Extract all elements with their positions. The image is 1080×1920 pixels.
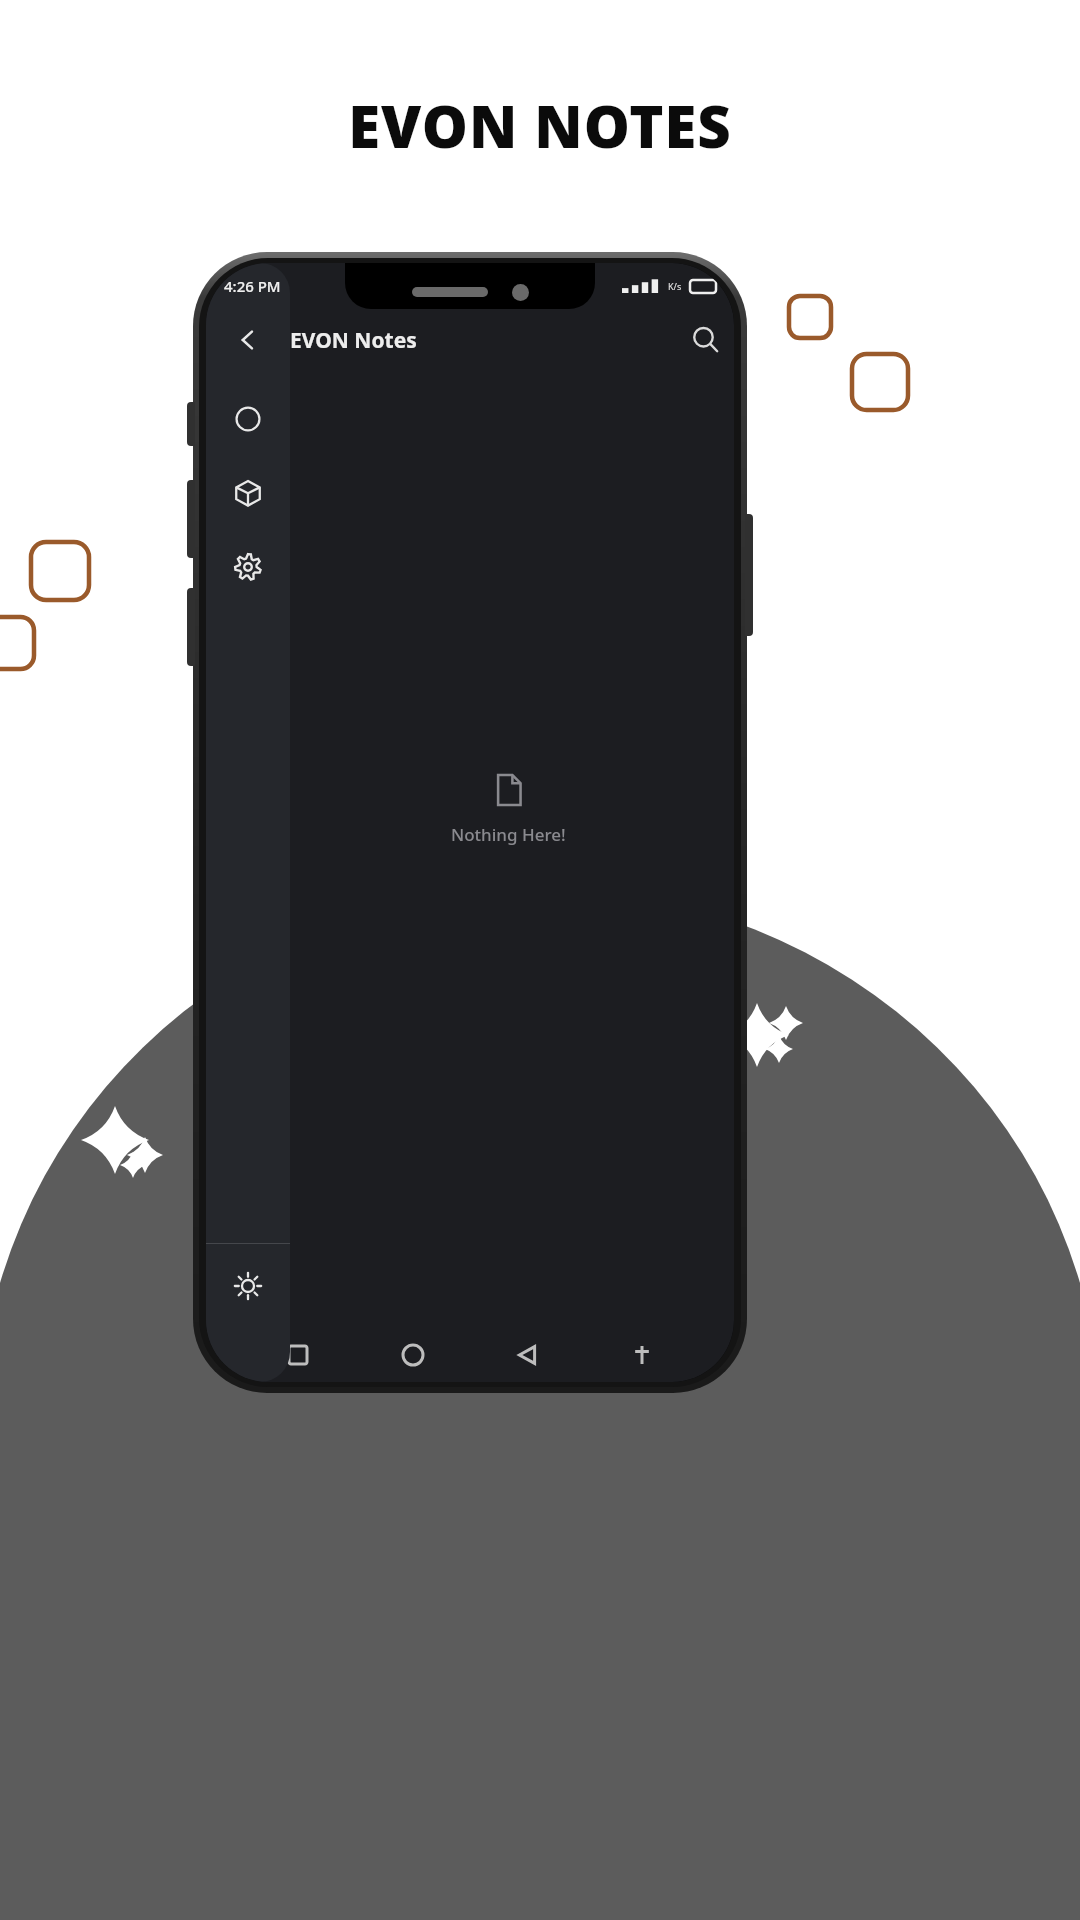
button[interactable]: Back	[505, 1333, 549, 1377]
button[interactable]: Home	[391, 1333, 435, 1377]
button[interactable]: Search	[678, 312, 734, 368]
button[interactable]: Notes	[220, 391, 276, 447]
button[interactable]: Toggle theme	[206, 1244, 290, 1328]
button[interactable]: Keyboard	[620, 1333, 664, 1377]
button[interactable]: Modules	[220, 465, 276, 521]
button[interactable]: Back	[217, 309, 279, 371]
staticText: Nothing Here!	[451, 823, 566, 846]
button[interactable]: Settings	[220, 539, 276, 595]
staticText: 4:26 PM	[224, 276, 281, 296]
staticText: K/s	[668, 280, 682, 292]
staticText: EVON Notes	[290, 326, 417, 355]
button[interactable]: Recents	[276, 1333, 320, 1377]
staticText: EVON NOTES	[348, 86, 732, 165]
